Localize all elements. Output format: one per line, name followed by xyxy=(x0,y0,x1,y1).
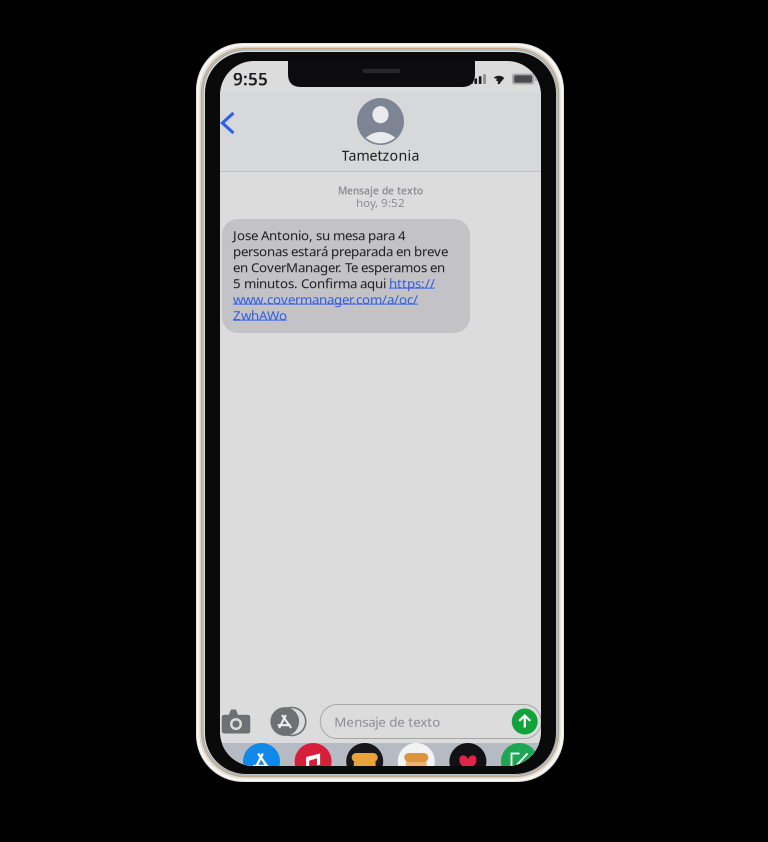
button[interactable]: Message field xyxy=(320,704,541,738)
staticText: en CoverManager. Te esperamos en xyxy=(233,259,445,275)
button[interactable]: Digital Touch xyxy=(449,743,486,780)
button[interactable]: Apps xyxy=(270,704,299,738)
button[interactable]: Music xyxy=(295,743,332,780)
button[interactable]: Memoji stickers xyxy=(398,743,435,780)
staticText: Tametzonia xyxy=(341,147,419,164)
staticText: 9:55 xyxy=(233,69,268,89)
staticText: ZwhAWo xyxy=(233,307,287,323)
staticText: Mensaje de texto xyxy=(334,714,440,729)
staticText: personas estará preparada en breve xyxy=(233,243,448,259)
staticText: www.covermanager.com/a/oc/ xyxy=(233,291,418,307)
button[interactable]: Memoji xyxy=(346,743,383,780)
button[interactable]: App Store xyxy=(243,743,280,780)
staticText: Mensaje de texto xyxy=(338,185,423,196)
staticText: Jose Antonio, su mesa para 4 xyxy=(233,227,406,243)
button[interactable]: Notes xyxy=(501,743,538,780)
button[interactable]: Tametzonia xyxy=(331,98,429,164)
button[interactable]: Back xyxy=(221,104,245,142)
staticText: https:// xyxy=(389,275,435,291)
staticText: hoy, 9:52 xyxy=(356,196,405,209)
staticText: 5 minutos. Confirma aqui xyxy=(233,275,389,291)
button[interactable]: Camera xyxy=(222,704,250,738)
